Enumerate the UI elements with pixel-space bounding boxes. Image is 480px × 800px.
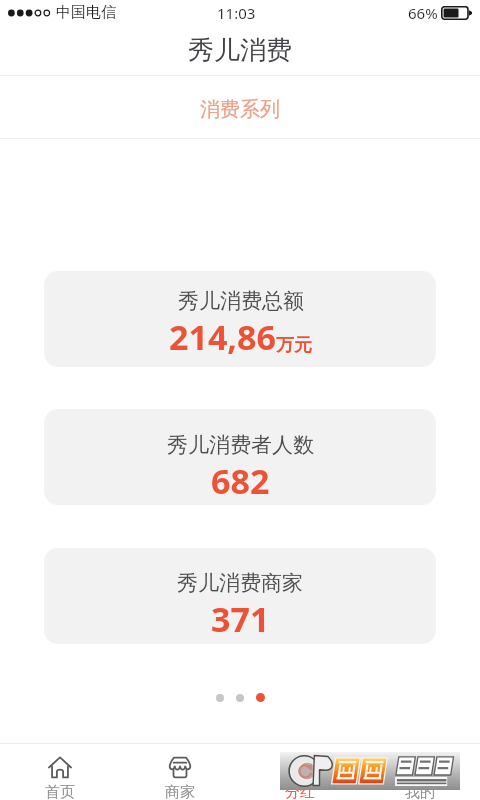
staticText: 秀儿消费商家 xyxy=(177,570,303,596)
button[interactable]: 秀儿消费商家 xyxy=(44,548,436,644)
staticText: 682 xyxy=(211,458,270,504)
staticText: 秀儿消费 xyxy=(188,34,292,67)
staticText: 万元 xyxy=(276,334,312,357)
staticText: 分红 xyxy=(285,783,315,800)
button[interactable]: 消费系列 xyxy=(170,81,310,134)
staticText: 首页 xyxy=(45,783,75,800)
staticText: 消费系列 xyxy=(200,97,280,122)
staticText: 214,86 xyxy=(169,314,276,360)
staticText: 秀儿消费总额 xyxy=(178,288,304,314)
staticText: 秀儿消费者人数 xyxy=(167,432,314,458)
staticText: 我的 xyxy=(405,783,435,800)
staticText: 商家 xyxy=(165,783,195,800)
button[interactable]: 分红 xyxy=(240,744,360,800)
button[interactable]: 我的 xyxy=(360,744,480,800)
staticText: 66% xyxy=(408,3,438,23)
staticText: 中国电信 xyxy=(56,3,116,22)
staticText: 371 xyxy=(211,596,270,642)
button[interactable]: 商家 xyxy=(120,744,240,800)
button[interactable]: 秀儿消费者人数 xyxy=(44,409,436,505)
button[interactable]: 秀儿消费总额 xyxy=(44,271,436,367)
button[interactable]: 首页 xyxy=(0,744,120,800)
staticText: 11:03 xyxy=(217,3,256,23)
